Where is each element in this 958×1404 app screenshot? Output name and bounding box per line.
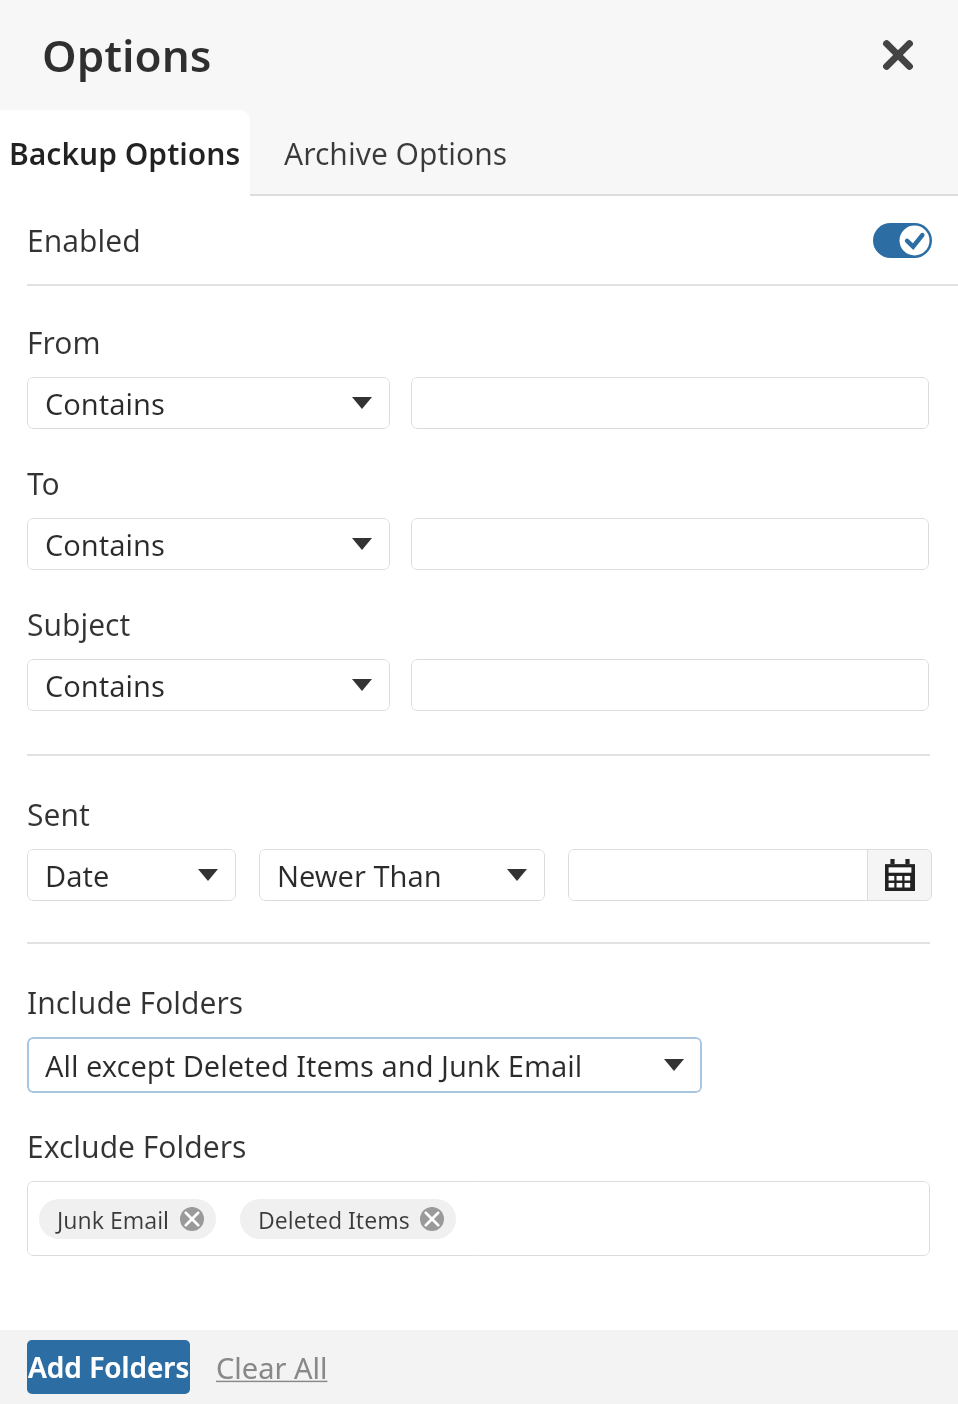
staticText: Contains — [45, 525, 165, 564]
staticText: Sent — [27, 794, 90, 835]
staticText: Contains — [45, 666, 165, 705]
button[interactable]: Remove Deleted Items — [420, 1207, 444, 1231]
button[interactable]: Archive Options — [250, 110, 542, 196]
staticText: Junk Email — [57, 1204, 170, 1235]
button[interactable] — [568, 849, 868, 901]
button[interactable]: Newer Than — [259, 849, 545, 901]
button[interactable] — [411, 518, 929, 570]
button[interactable]: Contains — [27, 377, 390, 429]
button[interactable]: Deleted Items — [240, 1199, 456, 1239]
staticText: Options — [42, 25, 212, 85]
staticText: Exclude Folders — [27, 1126, 247, 1167]
staticText: From — [27, 322, 101, 363]
button[interactable]: Junk Email — [39, 1199, 216, 1239]
staticText: Contains — [45, 384, 165, 423]
staticText: Backup Options — [9, 133, 241, 174]
staticText: Enabled — [27, 220, 141, 261]
button[interactable]: Junk Email — [27, 1181, 930, 1256]
staticText: Deleted Items — [258, 1204, 410, 1235]
button[interactable]: Add Folders — [27, 1340, 190, 1394]
staticText: To — [27, 463, 60, 504]
staticText: All except Deleted Items and Junk Email — [45, 1046, 583, 1085]
staticText: Subject — [27, 604, 131, 645]
button[interactable]: Backup Options — [0, 110, 250, 196]
staticText: Newer Than — [277, 856, 442, 895]
staticText: Add Folders — [28, 1348, 190, 1386]
button[interactable]: Date — [27, 849, 236, 901]
button[interactable]: Enabled toggle — [873, 223, 932, 258]
button[interactable]: Remove Junk Email — [180, 1207, 204, 1231]
button[interactable]: Contains — [27, 659, 390, 711]
button[interactable]: Contains — [27, 518, 390, 570]
staticText: Include Folders — [27, 982, 244, 1023]
staticText: Date — [45, 856, 110, 895]
button[interactable]: Clear All — [212, 1342, 332, 1393]
button[interactable]: Close — [870, 27, 926, 83]
staticText: Clear All — [216, 1348, 328, 1387]
button[interactable]: All except Deleted Items and Junk Email — [27, 1037, 702, 1093]
button[interactable] — [411, 377, 929, 429]
button[interactable]: Pick date — [868, 849, 932, 901]
button[interactable] — [411, 659, 929, 711]
staticText: Archive Options — [284, 133, 508, 174]
